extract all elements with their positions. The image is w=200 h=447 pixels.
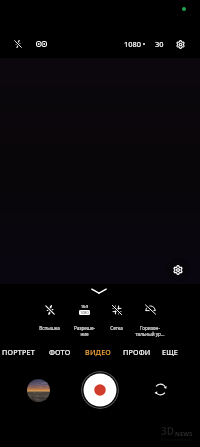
button[interactable]: Горизон- тальный ур... <box>133 303 167 337</box>
button[interactable]: 16:9 <box>67 303 101 337</box>
staticText: ЕЩЕ <box>162 347 178 357</box>
staticText: ФОТО <box>49 347 71 357</box>
staticText: 1080 <box>124 39 141 49</box>
staticText: 1080 <box>80 310 89 315</box>
staticText: Всё о компьютерах <box>161 438 191 442</box>
button[interactable]: ПОРТРЕТ <box>0 344 38 360</box>
staticText: 16:9 <box>81 304 89 309</box>
staticText: Вспышка <box>39 325 60 331</box>
staticText: ВИДЕО <box>85 347 112 357</box>
staticText: 30 <box>155 39 164 49</box>
button[interactable]: 1080 <box>124 38 164 50</box>
button[interactable]: Record <box>81 371 119 409</box>
button[interactable]: Сетка <box>99 303 133 331</box>
staticText: ПРОФИ <box>123 347 151 357</box>
button[interactable]: Вспышка <box>32 303 66 331</box>
button[interactable]: ФОТО <box>40 344 80 360</box>
button[interactable]: Switch camera <box>149 378 171 400</box>
button[interactable]: Settings <box>172 36 189 53</box>
staticText: 3D <box>161 424 175 438</box>
staticText: Сетка <box>110 325 123 331</box>
button[interactable]: Flash off <box>10 36 26 52</box>
button[interactable]: Camera settings <box>166 258 190 282</box>
staticText: Горизон- тальный ур... <box>135 325 165 337</box>
button[interactable]: ПРОФИ <box>117 344 157 360</box>
staticText: NEWS <box>175 430 193 438</box>
staticText: Разреше- ние <box>74 325 95 337</box>
button[interactable]: ЕЩЕ <box>150 344 190 360</box>
staticText: ПОРТРЕТ <box>2 347 35 357</box>
button[interactable]: Dual video <box>33 36 49 52</box>
button[interactable]: ВИДЕО <box>78 344 118 360</box>
button[interactable]: Gallery <box>27 379 50 402</box>
